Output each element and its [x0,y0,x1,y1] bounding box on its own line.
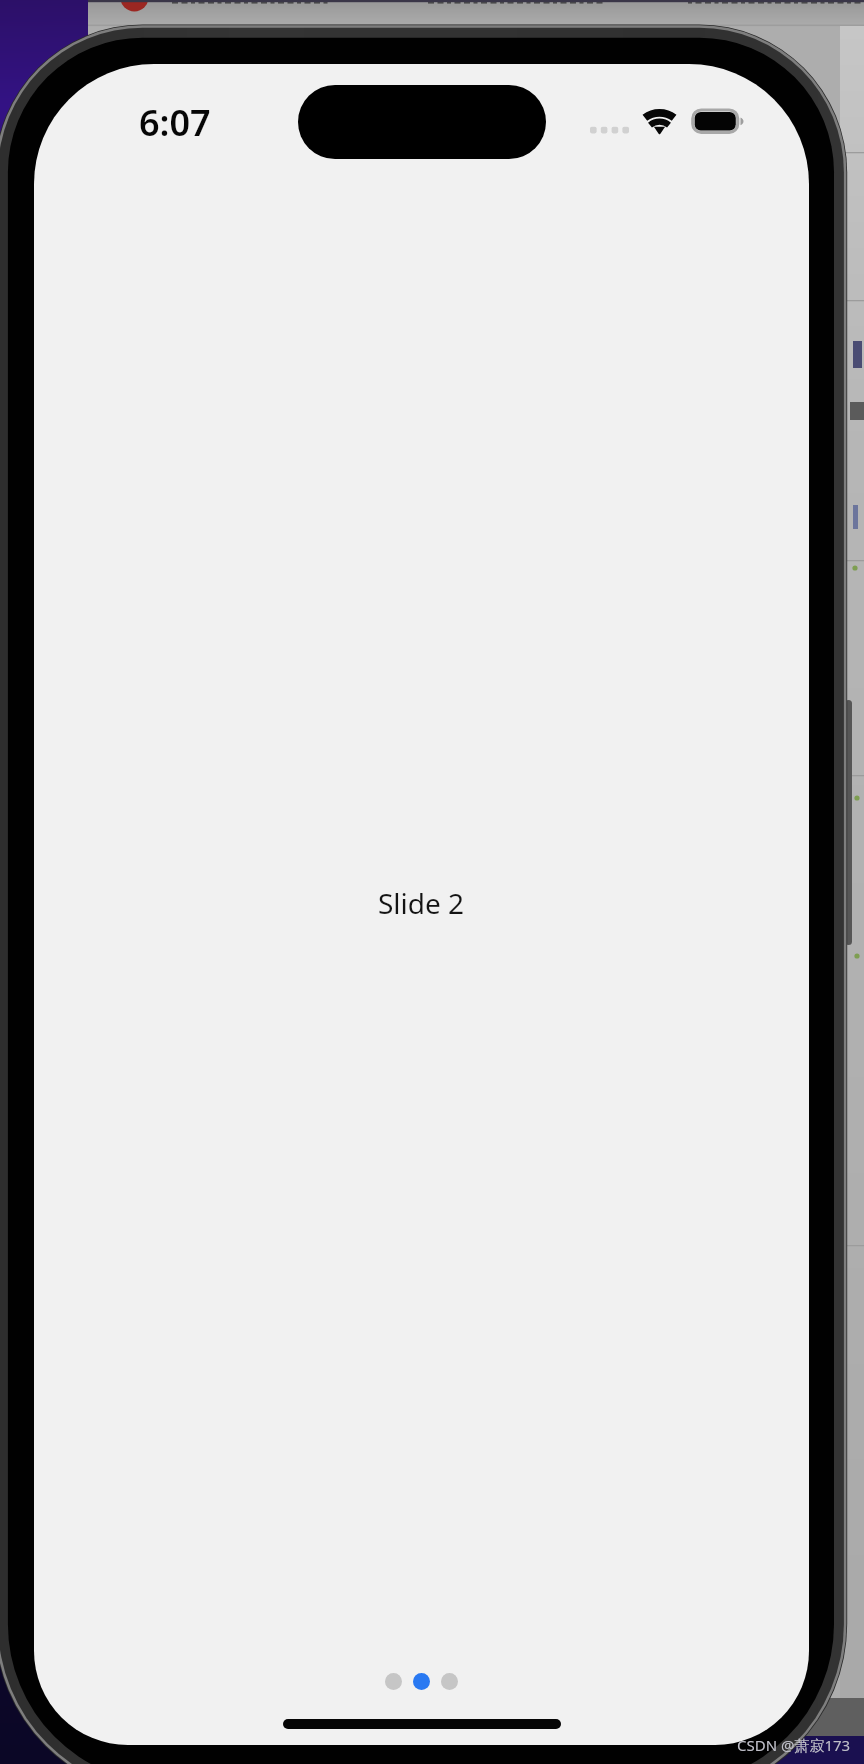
other: Status icons [585,100,755,144]
button[interactable] [385,1673,458,1690]
staticText: CSDN @萧寂173 [737,1735,851,1755]
staticText: 6:07 [139,98,211,147]
staticText: Slide 2 [378,884,465,922]
